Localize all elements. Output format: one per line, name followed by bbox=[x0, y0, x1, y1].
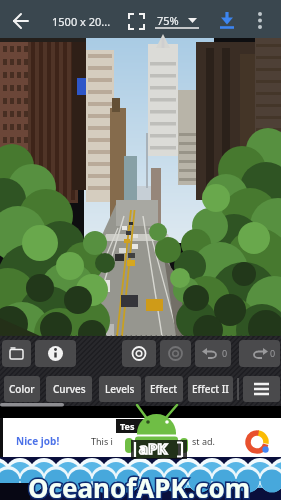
staticText: 75% bbox=[157, 13, 179, 28]
button[interactable]: Curves bbox=[46, 376, 92, 402]
staticText: This i bbox=[91, 435, 113, 447]
button[interactable] bbox=[4, 2, 38, 36]
staticText: OceanofAPK.com bbox=[28, 470, 251, 500]
staticText: Effect II bbox=[192, 382, 229, 396]
button[interactable] bbox=[35, 340, 76, 367]
staticText: st ad. bbox=[192, 435, 215, 447]
button[interactable] bbox=[248, 4, 274, 34]
staticText: OceanofAPK.com bbox=[28, 470, 251, 500]
staticText: aPK bbox=[139, 438, 168, 458]
button[interactable]: Nice job! bbox=[3, 418, 281, 457]
button[interactable] bbox=[160, 340, 191, 367]
staticText: Tes bbox=[120, 420, 135, 432]
button[interactable]: Effect bbox=[145, 376, 183, 402]
staticText: Color bbox=[9, 382, 35, 396]
staticText: 0 bbox=[222, 347, 228, 359]
staticText: Effect bbox=[150, 382, 178, 396]
button[interactable]: 75% bbox=[152, 6, 202, 34]
button[interactable] bbox=[243, 376, 280, 402]
button[interactable] bbox=[2, 340, 31, 367]
staticText: Levels bbox=[105, 382, 135, 396]
staticText: Nice job! bbox=[16, 434, 60, 448]
button[interactable] bbox=[239, 340, 280, 367]
staticText: Curves bbox=[53, 382, 86, 396]
button[interactable] bbox=[195, 340, 231, 367]
button[interactable] bbox=[212, 4, 242, 34]
button[interactable] bbox=[122, 340, 156, 367]
button[interactable] bbox=[122, 6, 150, 34]
staticText: 1500 x 20... bbox=[52, 14, 111, 29]
button[interactable]: Levels bbox=[99, 376, 141, 402]
button[interactable]: Color bbox=[4, 376, 40, 402]
staticText: 0 bbox=[270, 347, 276, 359]
button[interactable]: Effect II bbox=[188, 376, 233, 402]
